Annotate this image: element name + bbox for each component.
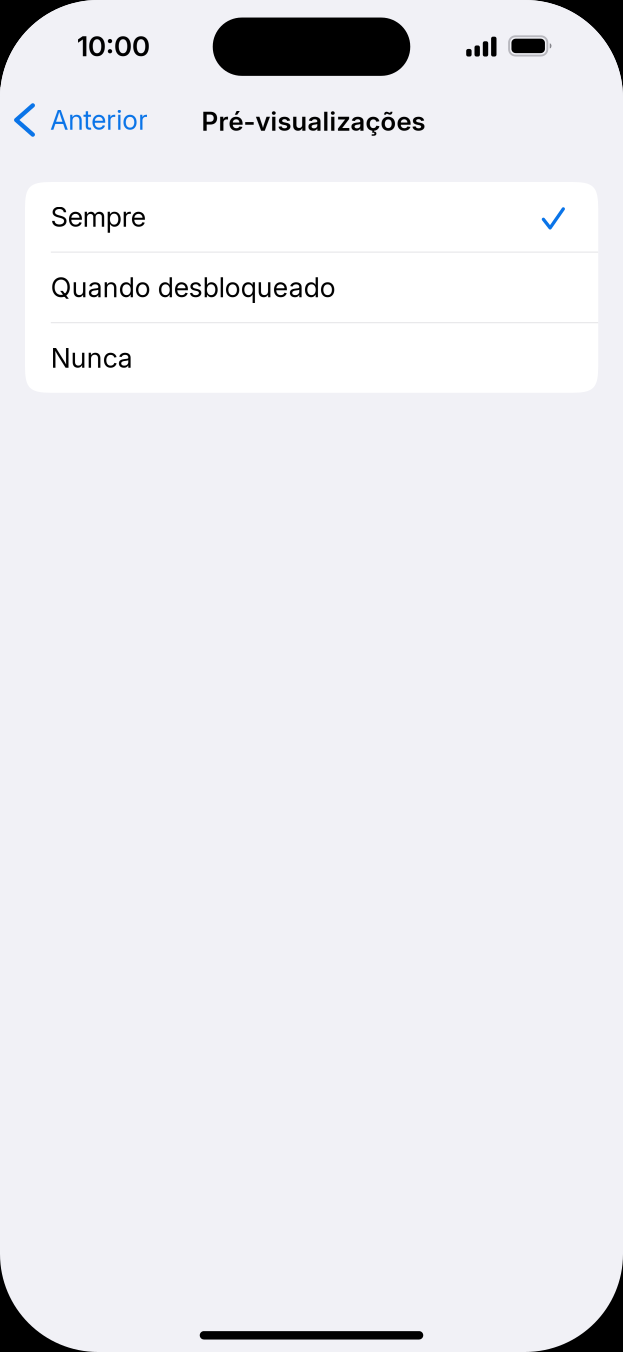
- staticText: Quando desbloqueado: [51, 271, 336, 304]
- staticText: Anterior: [50, 104, 148, 136]
- button[interactable]: Sempre: [25, 182, 598, 252]
- button[interactable]: Nunca: [25, 323, 598, 393]
- button[interactable]: Quando desbloqueado: [25, 253, 598, 322]
- staticText: 10:00: [77, 29, 150, 63]
- button[interactable]: Anterior: [0, 87, 162, 153]
- staticText: Nunca: [51, 342, 133, 374]
- staticText: Pré-visualizações: [201, 105, 425, 137]
- staticText: Sempre: [51, 200, 146, 233]
